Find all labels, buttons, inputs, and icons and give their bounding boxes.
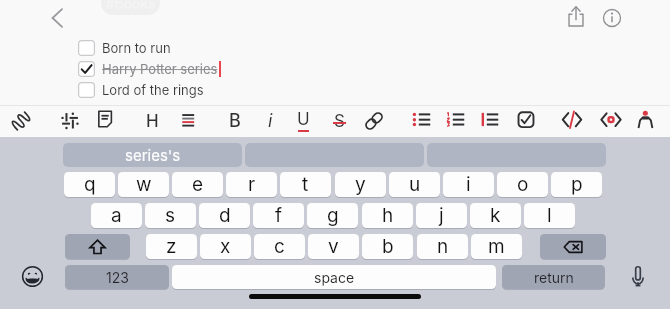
button[interactable]: q (64, 172, 115, 197)
staticText: q (84, 173, 96, 196)
button[interactable]: l (524, 203, 575, 228)
button[interactable]: Link (361, 107, 387, 135)
button[interactable]: o (497, 172, 548, 197)
button[interactable]: Share (564, 4, 588, 28)
button[interactable]: Numbered list (442, 107, 468, 135)
staticText: e (192, 173, 204, 196)
staticText: 123 (106, 269, 129, 286)
button[interactable]: Emoji keyboard (22, 266, 43, 287)
staticText: i (268, 110, 273, 132)
button[interactable]: Dictation (631, 265, 645, 287)
staticText: S (334, 111, 345, 132)
button[interactable]: k (470, 203, 521, 228)
button[interactable]: f (253, 203, 304, 228)
staticText: u (409, 173, 421, 196)
staticText: y (355, 173, 366, 196)
button[interactable]: Italic (257, 107, 283, 135)
button[interactable]: Bold (222, 107, 248, 135)
staticText: Born to run (102, 40, 171, 56)
staticText: v (328, 235, 339, 258)
button[interactable]: Heading (139, 107, 165, 135)
button[interactable]: r (226, 172, 277, 197)
staticText: d (219, 204, 231, 227)
button[interactable]: t (280, 172, 331, 197)
staticText: x (220, 235, 231, 258)
staticText: z (166, 235, 177, 258)
staticText: r (248, 173, 256, 196)
staticText: l (547, 204, 552, 227)
button[interactable]: y (335, 172, 386, 197)
button[interactable]: Born to run (78, 39, 171, 57)
staticText: Harry Potter series (102, 61, 218, 77)
staticText: a (111, 204, 122, 227)
button[interactable]: z (146, 234, 197, 259)
staticText: j (439, 204, 444, 227)
button[interactable]: m (471, 234, 522, 259)
staticText: s (165, 204, 176, 227)
button[interactable]: Back (48, 8, 66, 28)
staticText: o (517, 173, 529, 196)
button[interactable]: series's (63, 143, 242, 167)
button[interactable]: Scribble (8, 107, 34, 135)
button[interactable]: p (551, 172, 602, 197)
staticText: return (534, 269, 574, 286)
staticText: space (314, 269, 355, 286)
button[interactable]: w (118, 172, 169, 197)
staticText: U (297, 109, 310, 130)
staticText: h (382, 204, 394, 227)
staticText: b (382, 235, 394, 258)
button[interactable]: Checklist (513, 107, 539, 135)
button[interactable]: Harry Potter series (78, 60, 221, 78)
staticText: p (571, 173, 583, 196)
staticText: n (437, 235, 449, 258)
staticText: B (229, 110, 241, 132)
button[interactable]: c (254, 234, 305, 259)
button[interactable]: b (362, 234, 413, 259)
staticText: t (302, 173, 309, 196)
button[interactable]: n (417, 234, 468, 259)
button[interactable]: Backspace (540, 234, 606, 259)
button[interactable]: v (308, 234, 359, 259)
button[interactable]: Paragraph (175, 107, 201, 135)
button[interactable]: j (416, 203, 467, 228)
button[interactable]: 123 (65, 265, 169, 289)
staticText: k (490, 204, 501, 227)
button[interactable]: Text style (57, 107, 83, 135)
button[interactable]: s (145, 203, 196, 228)
button[interactable]: g (307, 203, 358, 228)
button[interactable]: Quote (476, 107, 502, 135)
button[interactable]: return (502, 265, 605, 289)
button[interactable]: Bulleted list (408, 107, 434, 135)
button[interactable]: Info (600, 6, 624, 30)
staticText: m (488, 235, 505, 258)
button[interactable]: x (200, 234, 251, 259)
button[interactable]: Shift (65, 234, 130, 259)
button[interactable]: u (389, 172, 440, 197)
staticText: H (146, 111, 159, 132)
button[interactable]: h (362, 203, 413, 228)
button[interactable]: Inline code (559, 107, 585, 135)
button[interactable]: Strikethrough (326, 107, 352, 135)
button[interactable]: a (91, 203, 142, 228)
staticText: w (136, 173, 152, 196)
button[interactable]: Highlight (633, 107, 659, 135)
button[interactable]: Note (92, 107, 118, 135)
staticText: g (327, 204, 339, 227)
button[interactable]: Underline (290, 107, 316, 135)
button[interactable]: space (172, 265, 496, 289)
button[interactable]: i (443, 172, 494, 197)
button[interactable]: d (199, 203, 250, 228)
staticText: i (466, 173, 471, 196)
button[interactable]: Lord of the rings (78, 81, 204, 99)
button[interactable]: Code block (598, 107, 624, 135)
staticText: c (274, 235, 285, 258)
staticText: series's (125, 146, 181, 164)
staticText: Lord of the rings (102, 82, 204, 98)
staticText: f (275, 204, 283, 227)
button[interactable]: e (172, 172, 223, 197)
